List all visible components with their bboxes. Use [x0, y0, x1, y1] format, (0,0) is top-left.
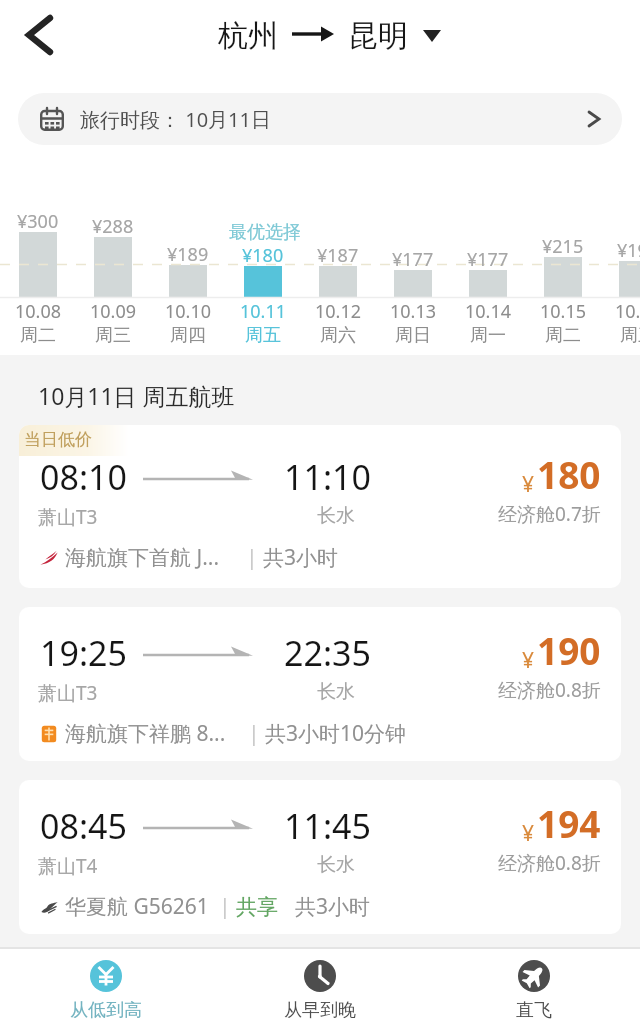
button[interactable]: 从低到高 [36, 952, 176, 1024]
staticText: 10.11 [240, 299, 287, 324]
staticText: ¥187 [317, 243, 359, 268]
staticText: 从低到高 [70, 999, 142, 1022]
staticText: 长水 [317, 504, 355, 528]
button[interactable]: Back [10, 6, 66, 62]
staticText: ¥300 [17, 209, 59, 234]
staticText: ¥177 [467, 247, 509, 272]
staticText: 长水 [317, 853, 355, 877]
button[interactable]: 旅行时段： 10月11日 [18, 93, 622, 145]
staticText: 10.14 [465, 299, 512, 324]
staticText: 周一 [470, 324, 506, 347]
staticText: 190 [537, 625, 601, 675]
staticText: | [246, 543, 258, 572]
staticText: ¥288 [92, 214, 134, 239]
staticText: 10月11日 周五航班 [38, 380, 235, 411]
staticText: 10.10 [165, 299, 212, 324]
staticText: 10.16 [615, 299, 640, 324]
staticText: | [219, 892, 231, 921]
button[interactable] [19, 607, 621, 761]
staticText: 昆明 [348, 17, 408, 55]
staticText: 周二 [20, 324, 56, 347]
staticText: ¥177 [392, 247, 434, 272]
staticText: 共3小时 [295, 892, 371, 921]
staticText: 共3小时10分钟 [265, 719, 407, 748]
staticText: 08:45 [40, 803, 127, 849]
staticText: 长水 [317, 680, 355, 704]
staticText: 周四 [170, 324, 206, 347]
staticText: 周五 [245, 324, 281, 347]
staticText: 10.15 [540, 299, 587, 324]
staticText: 经济舱0.7折 [498, 501, 601, 527]
staticText: ¥ [522, 646, 535, 675]
staticText: 直飞 [516, 999, 552, 1022]
staticText: 22:35 [284, 630, 371, 676]
staticText: 经济舱0.8折 [498, 677, 601, 703]
staticText: 19:25 [40, 630, 127, 676]
staticText: 08:10 [40, 454, 127, 500]
staticText: 当日低价 [24, 429, 92, 450]
button[interactable]: 直飞 [464, 952, 604, 1024]
button[interactable]: 从早到晚 [250, 952, 390, 1024]
staticText: 经济舱0.8折 [498, 850, 601, 876]
staticText: 11:45 [284, 803, 371, 849]
staticText: 周二 [545, 324, 581, 347]
staticText: | [248, 719, 260, 748]
staticText: 10.08 [15, 299, 62, 324]
staticText: ¥215 [542, 234, 584, 259]
staticText: ¥180 [242, 243, 284, 268]
staticText: 周六 [320, 324, 356, 347]
staticText: 旅行时段： 10月11日 [80, 106, 271, 133]
staticText: 180 [537, 449, 601, 499]
staticText: 10.12 [315, 299, 362, 324]
staticText: 11:10 [284, 454, 371, 500]
staticText: 最优选择 [229, 221, 301, 244]
staticText: 海航旗下首航 J... [65, 543, 220, 572]
staticText: 共享 [236, 894, 278, 920]
staticText: 周三 [95, 324, 131, 347]
button[interactable] [19, 425, 621, 588]
staticText: 杭州 [218, 17, 278, 55]
staticText: 萧山T3 [38, 504, 98, 530]
staticText: 周日 [395, 324, 431, 347]
staticText: ¥195 [617, 238, 640, 263]
staticText: ¥ [522, 819, 535, 848]
staticText: ¥189 [167, 242, 209, 267]
staticText: 周三 [620, 324, 640, 347]
staticText: 10.13 [390, 299, 437, 324]
staticText: 从早到晚 [284, 999, 356, 1022]
staticText: ¥ [522, 470, 535, 499]
staticText: 10.09 [90, 299, 137, 324]
staticText: 华夏航 G56261 [65, 892, 209, 921]
button[interactable] [19, 780, 621, 934]
staticText: 萧山T3 [38, 680, 98, 706]
staticText: 194 [537, 798, 601, 848]
staticText: 共3小时 [263, 543, 339, 572]
staticText: 海航旗下祥鹏 8... [65, 719, 226, 748]
staticText: 萧山T4 [38, 853, 98, 879]
